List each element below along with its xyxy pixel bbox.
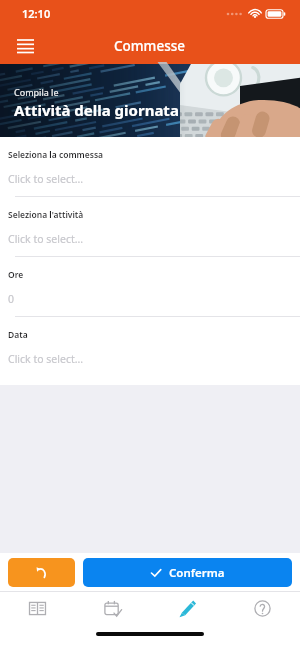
button[interactable]: Menu [8,31,42,61]
staticText: Seleziona la commessa [8,149,104,161]
button[interactable]: Annulla [8,558,75,587]
staticText: Ore [8,269,24,281]
staticText: Attività della giornata [14,100,179,120]
staticText: Click to select... [8,352,84,366]
staticText: 12:10 [22,6,51,21]
button[interactable]: Conferma [83,558,292,587]
staticText: Click to select... [8,172,84,186]
staticText: Seleziona l'attività [8,209,84,221]
staticText: Data [8,329,28,341]
staticText: Compila le [14,86,59,98]
button[interactable]: Attività [150,592,225,624]
button[interactable]: Calendario [75,592,150,624]
staticText: Conferma [169,565,225,581]
staticText: Commesse [114,37,186,55]
button[interactable]: Seleziona la commessa [0,137,300,197]
button[interactable]: Aiuto [225,592,300,624]
button[interactable]: Ore [0,257,300,317]
button[interactable]: Data [0,317,300,376]
button[interactable]: Catalogo [0,592,75,624]
staticText: 0 [8,292,15,306]
staticText: Click to select... [8,232,84,246]
button[interactable]: Seleziona l'attività [0,197,300,257]
